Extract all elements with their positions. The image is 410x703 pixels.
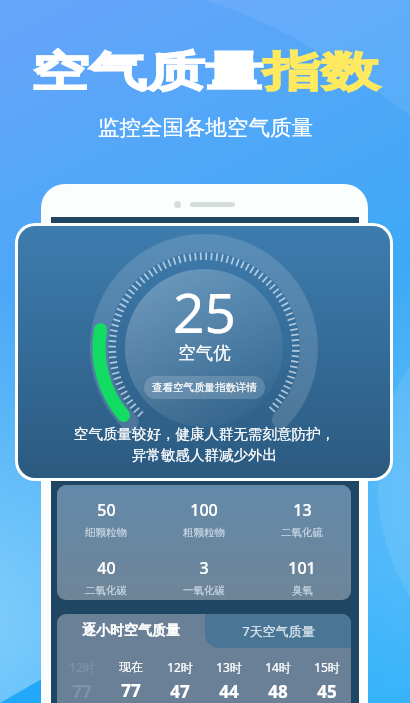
staticText: 13时 xyxy=(216,659,242,675)
staticText: 47 xyxy=(170,680,190,703)
staticText: 一氧化碳 xyxy=(183,584,225,597)
staticText: 粗颗粒物 xyxy=(183,526,225,539)
staticText: 空气优 xyxy=(178,342,231,364)
staticText: 二氧化碳 xyxy=(85,584,127,597)
button[interactable]: 50 xyxy=(57,499,155,539)
staticText: 14时 xyxy=(265,659,291,675)
staticText: 100 xyxy=(190,499,218,521)
staticText: 臭氧 xyxy=(292,584,313,597)
button[interactable]: 13时 xyxy=(204,659,253,703)
staticText: 77 xyxy=(72,680,92,703)
staticText: 48 xyxy=(268,680,288,703)
staticText: 7天空气质量 xyxy=(242,622,315,640)
button[interactable]: 7天空气质量 xyxy=(205,614,351,648)
staticText: 12时 xyxy=(69,659,95,675)
staticText: 25 xyxy=(173,274,236,349)
staticText: 异常敏感人群减少外出 xyxy=(132,446,277,464)
staticText: 空气质量较好，健康人群无需刻意防护， xyxy=(74,425,335,443)
staticText: 细颗粒物 xyxy=(85,526,127,539)
staticText: 现在 xyxy=(119,659,143,674)
staticText: 50 xyxy=(97,499,116,521)
button[interactable]: 3 xyxy=(155,557,253,597)
staticText: 空气质量 xyxy=(31,45,263,98)
button[interactable]: 现在 xyxy=(106,659,155,702)
staticText: 77 xyxy=(121,679,141,702)
staticText: 二氧化硫 xyxy=(281,526,323,539)
staticText: 查看空气质量指数详情 xyxy=(152,381,257,394)
button[interactable]: 40 xyxy=(57,557,155,597)
staticText: 3 xyxy=(199,557,209,579)
button[interactable]: 13 xyxy=(253,499,351,539)
button[interactable]: 12时 xyxy=(155,659,204,703)
button[interactable]: 12时 xyxy=(57,659,106,703)
staticText: 45 xyxy=(317,680,337,703)
staticText: 12时 xyxy=(167,659,193,675)
staticText: 13 xyxy=(293,499,312,521)
staticText: 44 xyxy=(219,680,239,703)
button[interactable]: 100 xyxy=(155,499,253,539)
button[interactable]: 101 xyxy=(253,557,351,597)
staticText: 101 xyxy=(288,557,316,579)
staticText: 40 xyxy=(97,557,116,579)
button[interactable]: 查看空气质量指数详情 xyxy=(144,376,265,399)
button[interactable]: 14时 xyxy=(253,659,302,703)
staticText: 监控全国各地空气质量 xyxy=(98,114,313,141)
staticText: 15时 xyxy=(314,659,340,675)
staticText: 指数 xyxy=(263,45,379,98)
button[interactable]: 逐小时空气质量 xyxy=(57,614,205,648)
staticText: 逐小时空气质量 xyxy=(82,622,180,640)
button[interactable]: 15时 xyxy=(302,659,351,703)
